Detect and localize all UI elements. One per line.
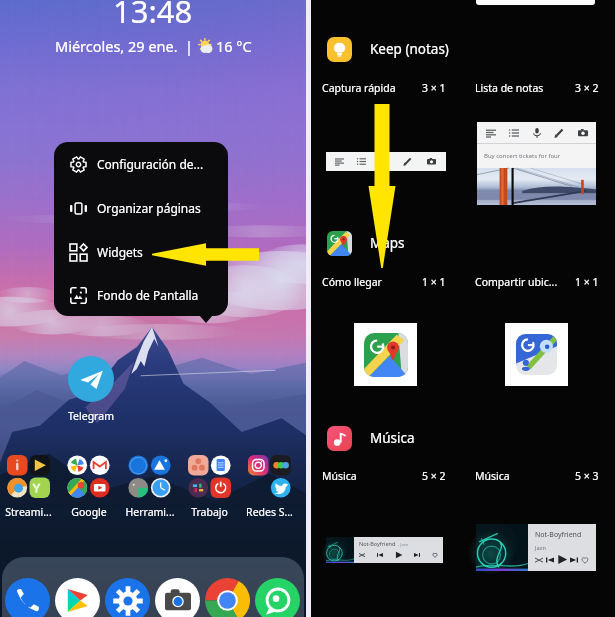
- staticText: Google: [71, 505, 107, 519]
- staticText: 1 × 1: [422, 275, 446, 289]
- button[interactable]: Buy concert tickets for four: [477, 122, 596, 205]
- button[interactable]: Herrami...: [119, 455, 180, 519]
- staticText: - Jaxn: [398, 542, 409, 547]
- button[interactable]: Not-Boyfriend: [326, 537, 443, 563]
- staticText: 16 °C: [216, 36, 252, 56]
- staticText: Organizar páginas: [97, 200, 201, 216]
- staticText: Widgets: [97, 244, 143, 260]
- staticText: Música: [370, 429, 415, 447]
- button[interactable]: Fondo de Pantalla: [54, 274, 228, 316]
- button[interactable]: Phone: [5, 578, 50, 617]
- staticText: Not-Boyfriend: [535, 530, 582, 540]
- button[interactable]: Configuración de...: [54, 142, 228, 186]
- staticText: Cómo llegar: [322, 275, 382, 289]
- staticText: Configuración de...: [97, 156, 204, 172]
- button[interactable]: Chrome: [205, 578, 250, 617]
- staticText: Música: [322, 469, 357, 483]
- staticText: 3 × 2: [575, 81, 599, 95]
- button[interactable]: Camera: [155, 578, 200, 617]
- staticText: Miércoles, 29 ene. |: [55, 36, 194, 56]
- staticText: Keep (notas): [370, 40, 449, 58]
- button[interactable]: Telegram: [66, 356, 116, 423]
- staticText: Lista de notas: [475, 81, 544, 95]
- staticText: Redes S...: [246, 505, 293, 519]
- staticText: 1 × 1: [575, 275, 599, 289]
- button[interactable]: Widgets: [54, 230, 228, 274]
- staticText: Captura rápida: [322, 81, 396, 95]
- staticText: Telegram: [68, 409, 114, 423]
- button[interactable]: Keep (notas): [311, 35, 615, 63]
- staticText: Buy concert tickets for four: [484, 152, 561, 160]
- staticText: 5 × 2: [422, 469, 446, 483]
- button[interactable]: Redes S...: [239, 455, 300, 519]
- button[interactable]: WhatsApp: [255, 578, 300, 617]
- button[interactable]: [354, 323, 417, 386]
- staticText: Jaxn: [535, 544, 546, 551]
- staticText: 3 × 1: [422, 81, 446, 95]
- staticText: Maps: [370, 234, 405, 252]
- button[interactable]: Google: [58, 455, 119, 519]
- staticText: Compartir ubic...: [475, 275, 558, 289]
- staticText: Streami...: [5, 505, 52, 519]
- staticText: Not-Boyfriend: [359, 540, 396, 547]
- staticText: Música: [475, 469, 510, 483]
- button[interactable]: Maps: [311, 229, 615, 257]
- button[interactable]: Trabajo: [179, 455, 240, 519]
- staticText: 13:48: [113, 0, 193, 32]
- button[interactable]: [326, 152, 446, 171]
- button[interactable]: Organizar páginas: [54, 186, 228, 230]
- button[interactable]: Not-Boyfriend: [476, 524, 596, 571]
- button[interactable]: [505, 323, 568, 386]
- staticText: Trabajo: [191, 505, 228, 519]
- button[interactable]: Música: [311, 424, 615, 452]
- button[interactable]: Play Store: [55, 578, 100, 617]
- button[interactable]: Settings: [105, 578, 150, 617]
- button[interactable]: Streami...: [0, 455, 59, 519]
- staticText: 5 × 3: [575, 469, 599, 483]
- staticText: Herrami...: [125, 505, 175, 519]
- staticText: Fondo de Pantalla: [97, 287, 199, 303]
